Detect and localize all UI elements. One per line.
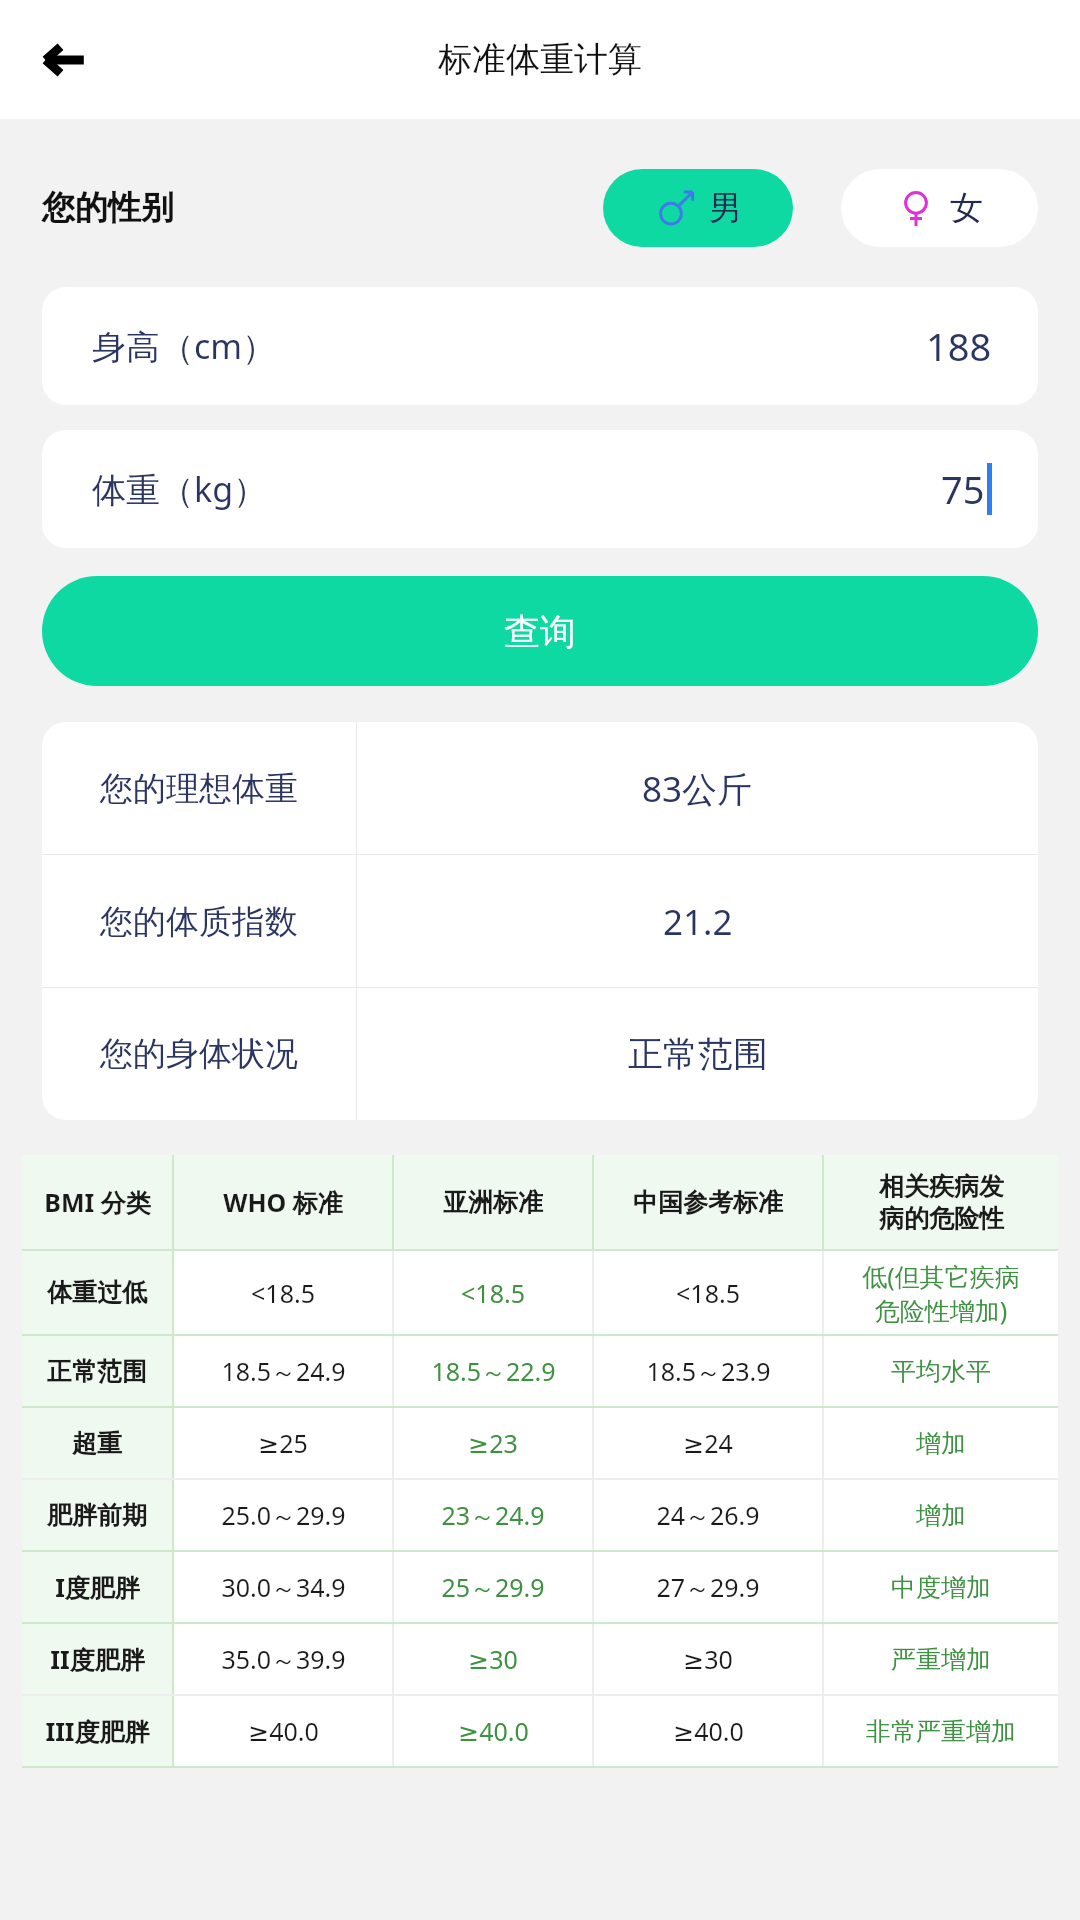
staticText: II度肥胖 xyxy=(50,1642,145,1676)
staticText: 23～24.9 xyxy=(441,1498,545,1532)
staticText: <18.5 xyxy=(251,1276,315,1310)
button[interactable]: 体重（kg） xyxy=(42,430,1038,548)
staticText: 标准体重计算 xyxy=(438,38,642,81)
staticText: 中国参考标准 xyxy=(633,1187,783,1218)
staticText: ≥25 xyxy=(258,1426,308,1460)
button[interactable]: Back xyxy=(28,24,100,96)
staticText: ≥30 xyxy=(683,1642,733,1676)
staticText: 增加 xyxy=(916,1500,966,1531)
staticText: 18.5～23.9 xyxy=(646,1354,771,1388)
staticText: 18.5～24.9 xyxy=(221,1354,346,1388)
staticText: ≥30 xyxy=(468,1642,518,1676)
staticText: 188 xyxy=(926,320,992,372)
staticText: ≥23 xyxy=(468,1426,518,1460)
staticText: 24～26.9 xyxy=(656,1498,760,1532)
staticText: 27～29.9 xyxy=(656,1570,760,1604)
button[interactable]: 男 xyxy=(603,169,793,247)
staticText: 相关疾病发 病的危险性 xyxy=(879,1171,1004,1234)
staticText: ≥40.0 xyxy=(248,1714,319,1748)
staticText: 超重 xyxy=(72,1428,122,1459)
staticText: <18.5 xyxy=(461,1276,525,1310)
staticText: WHO 标准 xyxy=(223,1185,343,1219)
staticText: ≥40.0 xyxy=(673,1714,744,1748)
staticText: 严重增加 xyxy=(891,1644,991,1675)
staticText: 您的理想体重 xyxy=(100,768,298,810)
staticText: 体重（kg） xyxy=(92,466,268,512)
staticText: 肥胖前期 xyxy=(47,1500,147,1531)
staticText: 正常范围 xyxy=(628,1032,768,1076)
staticText: 身高（cm） xyxy=(92,323,277,369)
staticText: 非常严重增加 xyxy=(866,1716,1016,1747)
button[interactable]: 女 xyxy=(841,169,1038,247)
staticText: 男 xyxy=(709,187,742,229)
staticText: I度肥胖 xyxy=(55,1570,140,1604)
staticText: 中度增加 xyxy=(891,1572,991,1603)
button[interactable]: 查询 xyxy=(42,576,1038,686)
staticText: 您的性别 xyxy=(42,187,174,229)
button[interactable]: 身高（cm） xyxy=(42,287,1038,405)
staticText: 查询 xyxy=(504,609,576,654)
staticText: 增加 xyxy=(916,1428,966,1459)
staticText: 21.2 xyxy=(663,898,733,946)
staticText: 体重过低 xyxy=(47,1277,147,1308)
staticText: 亚洲标准 xyxy=(443,1187,543,1218)
staticText: III度肥胖 xyxy=(45,1714,150,1748)
staticText: ≥24 xyxy=(683,1426,733,1460)
staticText: 25.0～29.9 xyxy=(221,1498,346,1532)
staticText: ≥40.0 xyxy=(458,1714,529,1748)
staticText: 女 xyxy=(950,187,983,229)
staticText: 正常范围 xyxy=(47,1356,147,1387)
staticText: 平均水平 xyxy=(891,1356,991,1387)
staticText: 83公斤 xyxy=(642,765,753,813)
staticText: 30.0～34.9 xyxy=(221,1570,346,1604)
staticText: 低(但其它疾病 危险性增加) xyxy=(862,1259,1020,1327)
staticText: BMI 分类 xyxy=(44,1185,151,1219)
staticText: 25～29.9 xyxy=(441,1570,545,1604)
staticText: 18.5～22.9 xyxy=(431,1354,556,1388)
staticText: 您的身体状况 xyxy=(100,1033,298,1075)
staticText: 您的体质指数 xyxy=(100,901,298,943)
staticText: <18.5 xyxy=(676,1276,740,1310)
staticText: 35.0～39.9 xyxy=(221,1642,346,1676)
staticText: 75 xyxy=(941,463,985,515)
